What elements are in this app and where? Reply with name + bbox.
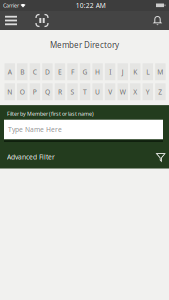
staticText: O — [20, 87, 25, 96]
staticText: T — [83, 87, 87, 96]
staticText: Advanced Filter — [7, 152, 55, 161]
button[interactable]: Home — [21, 11, 48, 30]
button[interactable]: J — [117, 63, 128, 80]
button[interactable]: C — [30, 63, 40, 80]
staticText: V — [108, 87, 112, 96]
staticText: Filter by Member (first or last name) — [7, 110, 94, 117]
button[interactable]: G — [80, 63, 90, 80]
staticText: Z — [158, 87, 162, 96]
staticText: W — [120, 87, 126, 96]
button[interactable]: D — [42, 63, 53, 80]
button[interactable]: Menu — [0, 11, 21, 30]
staticText: G — [82, 67, 87, 76]
staticText: B — [20, 67, 24, 76]
staticText: S — [70, 87, 74, 96]
button[interactable]: F — [67, 63, 78, 80]
staticText: M — [157, 67, 163, 76]
staticText: L — [146, 67, 149, 76]
staticText: X — [133, 87, 137, 96]
staticText: Carrier — [3, 2, 19, 9]
button[interactable]: H — [92, 63, 103, 80]
button[interactable]: V — [105, 83, 115, 100]
staticText: A — [8, 67, 12, 76]
button[interactable]: Z — [155, 83, 166, 100]
button[interactable]: I — [105, 63, 115, 80]
button[interactable]: Type Name Here — [4, 120, 163, 139]
staticText: I — [109, 67, 111, 76]
button[interactable]: U — [92, 83, 103, 100]
button[interactable]: K — [130, 63, 140, 80]
button[interactable]: Advanced Filter — [0, 145, 169, 168]
button[interactable]: P — [30, 83, 40, 100]
button[interactable]: B — [17, 63, 28, 80]
button[interactable]: A — [4, 63, 15, 80]
staticText: F — [71, 67, 74, 76]
staticText: H — [95, 67, 100, 76]
staticText: 10:22 AM — [76, 1, 106, 10]
button[interactable]: Notifications — [153, 11, 169, 30]
staticText: N — [7, 87, 12, 96]
button[interactable]: L — [142, 63, 153, 80]
button[interactable]: E — [55, 63, 65, 80]
staticText: P — [33, 87, 37, 96]
staticText: J — [122, 67, 124, 76]
button[interactable]: N — [4, 83, 15, 100]
button[interactable]: Q — [42, 83, 53, 100]
button[interactable]: X — [130, 83, 140, 100]
button[interactable]: T — [80, 83, 90, 100]
button[interactable]: S — [67, 83, 78, 100]
staticText: K — [133, 67, 137, 76]
staticText: E — [58, 67, 62, 76]
staticText: Type Name Here — [8, 125, 62, 134]
staticText: U — [95, 87, 100, 96]
staticText: D — [45, 67, 50, 76]
staticText: R — [58, 87, 62, 96]
button[interactable]: M — [155, 63, 166, 80]
staticText: C — [33, 67, 37, 76]
button[interactable]: R — [55, 83, 65, 100]
button[interactable]: O — [17, 83, 28, 100]
button[interactable]: W — [117, 83, 128, 100]
button[interactable]: Y — [142, 83, 153, 100]
staticText: Y — [146, 87, 150, 96]
staticText: Q — [45, 87, 50, 96]
staticText: Member Directory — [50, 39, 119, 50]
